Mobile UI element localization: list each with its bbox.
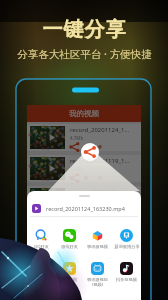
button[interactable]: record_20201124_163230.mp4 [27,200,141,216]
button[interactable]: QQ空间 [55,262,83,283]
staticText: 新浪微博分享 [114,244,140,249]
staticText: 微信好友 [61,244,78,249]
button[interactable]: Share [70,207,79,211]
button[interactable]: record_20201124_1... [27,124,141,151]
button[interactable]: 我的视频 [27,105,141,122]
staticText: QQ空间 [62,277,77,283]
staticText: 抖音短视频 [116,277,137,282]
button[interactable]: Share [70,176,79,180]
staticText: record_20201124_1... [70,126,130,134]
staticText: 朋友圈 [35,277,48,282]
button[interactable]: Share [81,143,99,161]
staticText: 腾讯微视频 [87,244,108,249]
staticText: 腾讯微视短 (视频) [87,277,108,287]
button[interactable]: Block [84,145,93,149]
button[interactable]: 腾讯微视频 [83,229,112,249]
button[interactable]: 抖音短视频 [112,262,141,282]
staticText: 我的视频 [69,109,99,118]
staticText: 9.2Mb [70,166,84,172]
button[interactable]: Delete [98,145,107,149]
staticText: 分享各大社区平台 · 方便快捷 [17,47,152,61]
button[interactable]: Block [84,207,93,211]
staticText: record_20201101_1... [70,188,130,196]
button[interactable]: 微信好友 [55,229,83,249]
button[interactable]: 朋友圈 [27,262,55,282]
button[interactable]: Delete [98,176,107,180]
button[interactable]: 腾讯微视短 (视频) [83,262,112,287]
button[interactable]: QQ好友 [27,229,55,250]
button[interactable]: Block [84,176,93,180]
staticText: 一键分享 [42,17,126,42]
staticText: QQ好友 [34,244,49,250]
staticText: record_20201124_163230.mp4 [46,205,125,212]
button[interactable]: 新浪微博分享 [112,229,141,249]
button[interactable]: Share [70,145,79,149]
staticText: 4.7Mb [70,135,84,141]
button[interactable]: record_20201119_1... [27,155,141,182]
button[interactable]: record_20201101_1... [27,186,141,213]
staticText: record_20201119_1... [70,157,130,165]
button[interactable]: Delete [98,207,107,211]
